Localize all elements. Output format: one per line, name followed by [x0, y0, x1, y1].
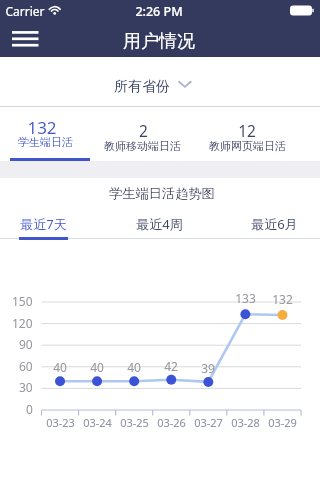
staticText: 03-23 [46, 415, 75, 430]
staticText: 12 [238, 120, 256, 141]
button[interactable] [200, 107, 292, 162]
staticText: 0 [26, 401, 33, 417]
button[interactable] [95, 107, 187, 162]
button[interactable] [12, 210, 74, 240]
button[interactable] [242, 210, 304, 240]
staticText: 132 [27, 116, 57, 139]
staticText: Carrier [5, 3, 45, 19]
staticText: 90 [19, 336, 33, 352]
staticText: 40 [53, 359, 67, 375]
staticText: 学生端日活 [18, 135, 73, 149]
staticText: 60 [19, 358, 33, 374]
staticText: 最近6月 [251, 215, 298, 233]
staticText: 39 [201, 360, 215, 376]
staticText: 40 [90, 359, 104, 375]
staticText: 用户情况 [123, 30, 195, 53]
staticText: 最近4周 [136, 215, 183, 233]
staticText: 03-27 [194, 415, 223, 430]
staticText: 03-28 [231, 415, 260, 430]
staticText: 120 [12, 315, 33, 331]
staticText: 30 [19, 379, 33, 395]
staticText: 2:26 PM [135, 3, 183, 20]
button[interactable] [128, 210, 190, 240]
button[interactable] [0, 57, 320, 106]
button[interactable] [0, 107, 92, 162]
staticText: 03-29 [268, 415, 297, 430]
staticText: 2 [139, 120, 148, 141]
staticText: 学生端日活趋势图 [109, 185, 215, 202]
staticText: 所有省份 [114, 78, 170, 96]
staticText: 150 [12, 293, 33, 309]
staticText: 40 [127, 359, 141, 375]
staticText: 133 [235, 290, 256, 306]
staticText: 03-26 [157, 415, 186, 430]
staticText: 03-24 [83, 415, 112, 430]
staticText: 教师网页端日活 [209, 139, 286, 153]
staticText: 最近7天 [20, 215, 67, 233]
staticText: 03-25 [120, 415, 149, 430]
staticText: 教师移动端日活 [104, 139, 181, 153]
staticText: 42 [164, 358, 178, 374]
staticText: 132 [272, 291, 293, 307]
button[interactable] [4, 25, 47, 52]
